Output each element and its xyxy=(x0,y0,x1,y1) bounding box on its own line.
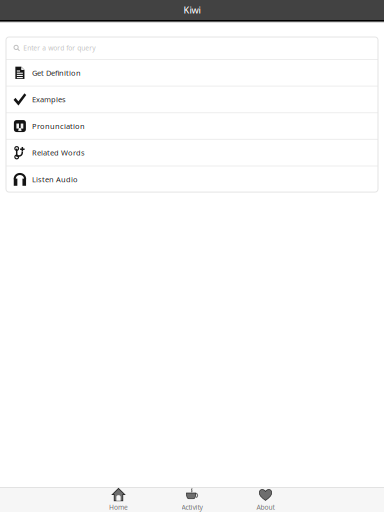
button[interactable]: Get Definition xyxy=(6,60,378,86)
button[interactable]: Home xyxy=(82,487,155,512)
staticText: Kiwi xyxy=(183,4,200,16)
staticText: Home xyxy=(109,503,128,512)
staticText: Enter a word for query xyxy=(23,44,95,52)
staticText: Activity xyxy=(181,503,202,512)
button[interactable]: About xyxy=(229,487,302,512)
staticText: About xyxy=(256,503,274,512)
button[interactable]: Activity xyxy=(155,487,229,512)
staticText: Related Words xyxy=(32,148,85,158)
button[interactable]: Listen Audio xyxy=(6,166,378,192)
button[interactable]: Pronunciation xyxy=(6,113,378,139)
staticText: Examples xyxy=(32,94,66,104)
button[interactable]: Related Words xyxy=(6,140,378,165)
staticText: Pronunciation xyxy=(32,121,85,131)
staticText: Get Definition xyxy=(32,68,81,78)
button[interactable]: Enter a word for query xyxy=(6,37,378,59)
button[interactable]: Examples xyxy=(6,87,378,112)
staticText: Listen Audio xyxy=(32,174,78,184)
